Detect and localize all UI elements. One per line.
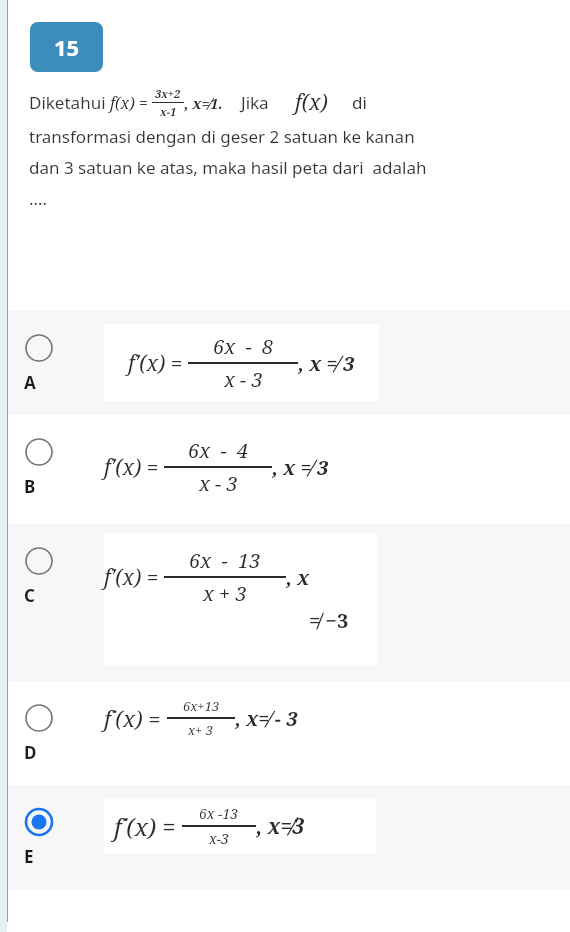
staticText: x − 3 — [224, 366, 263, 393]
staticText: 15 — [54, 32, 80, 62]
staticText: x − 3 — [199, 470, 238, 497]
staticText: di — [352, 91, 367, 114]
staticText: 6x − 13 — [189, 547, 261, 574]
button[interactable]: Option E — [8, 785, 570, 890]
staticText: 6x+13 — [183, 697, 220, 715]
staticText: , x ≠ 3 — [272, 454, 329, 481]
staticText: x+ 3 — [188, 721, 214, 739]
staticText: Jika — [241, 91, 269, 114]
staticText: x + 3 — [203, 580, 247, 607]
staticText: , x ≠ 3 — [298, 350, 355, 377]
staticText: , x — [286, 564, 310, 591]
staticText: f˙(x) = — [114, 810, 182, 843]
staticText: 6x −13 — [199, 804, 239, 823]
button[interactable]: 15 — [30, 22, 103, 72]
staticText: f(x) — [295, 88, 328, 117]
staticText: A — [24, 371, 36, 394]
staticText: C — [24, 584, 35, 607]
staticText: x−1 — [160, 104, 177, 119]
staticText: f′(x) = — [128, 349, 188, 378]
staticText: transformasi dengan di geser 2 satuan ke… — [29, 125, 415, 148]
button[interactable]: Option B — [8, 415, 570, 524]
staticText: f′(x) = — [104, 453, 164, 482]
staticText: 6x − 4 — [188, 437, 249, 464]
staticText: 3x+2 — [155, 86, 181, 101]
staticText: f˙(x) = — [104, 703, 167, 733]
staticText: ≠ −3 — [309, 607, 349, 634]
button[interactable]: Option C — [8, 524, 570, 681]
staticText: B — [24, 475, 36, 498]
button[interactable]: Option D — [8, 681, 570, 785]
staticText: E — [24, 845, 34, 868]
staticText: , x≠1. — [184, 93, 223, 113]
staticText: x−3 — [209, 829, 229, 848]
staticText: f′(x) = — [104, 563, 164, 592]
staticText: , x≠ − 3 — [235, 705, 298, 732]
staticText: Diketahui — [29, 91, 110, 114]
staticText: 6x − 8 — [213, 333, 274, 360]
staticText: dan 3 satuan ke atas, maka hasil peta da… — [29, 156, 427, 179]
staticText: , x≠3 — [256, 812, 305, 841]
staticText: D — [24, 741, 37, 764]
staticText: …. — [29, 187, 48, 210]
button[interactable]: Option A — [8, 311, 570, 415]
staticText: f(x) = — [110, 92, 149, 114]
